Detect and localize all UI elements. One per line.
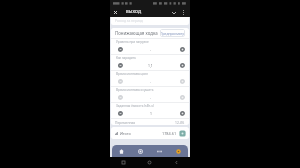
- button[interactable]: Increase: [179, 62, 185, 68]
- button[interactable]: Back: [163, 157, 190, 168]
- button[interactable]: Statistics: [150, 145, 169, 157]
- staticText: -: [150, 79, 152, 84]
- staticText: 12.4%: [175, 120, 185, 124]
- staticText: Переменная: [115, 120, 136, 124]
- staticText: -: [150, 47, 152, 52]
- button[interactable]: Decrease: [117, 94, 123, 100]
- staticText: Как зарядить: [116, 56, 136, 60]
- button[interactable]: Expand: [169, 8, 178, 17]
- button[interactable]: Предпросмотр: [160, 29, 185, 37]
- button[interactable]: Итого: [111, 127, 189, 139]
- staticText: Расход за период: [115, 18, 143, 22]
- staticText: 1: [150, 111, 152, 116]
- button[interactable]: Increase: [179, 46, 185, 52]
- button[interactable]: Schedule: [131, 145, 150, 157]
- staticText: Понижающая ходка: [115, 30, 158, 36]
- button[interactable]: More options: [179, 8, 188, 17]
- staticText: ВЫХОД: [126, 9, 142, 15]
- button[interactable]: Decrease: [117, 78, 123, 84]
- button[interactable]: Settings: [169, 145, 188, 157]
- staticText: 1,1: [148, 63, 153, 68]
- staticText: Итого: [120, 131, 131, 136]
- button[interactable]: Decrease: [117, 46, 123, 52]
- staticText: Время монтажа осушить: [116, 88, 154, 92]
- button[interactable]: Home: [136, 157, 163, 168]
- button[interactable]: Increase: [179, 78, 185, 84]
- staticText: Заданная ёмкость (кВт-ч): [116, 104, 154, 108]
- staticText: Время монтажа цикл: [116, 72, 148, 76]
- button[interactable]: Decrease: [117, 110, 123, 116]
- staticText: Уровень при загрузке: [116, 40, 149, 44]
- button[interactable]: Close: [111, 8, 120, 17]
- staticText: Предпросмотр: [160, 31, 185, 36]
- button[interactable]: Recents: [110, 157, 136, 168]
- button[interactable]: Decrease: [117, 62, 123, 68]
- staticText: -: [150, 95, 152, 100]
- button[interactable]: Increase: [179, 94, 185, 100]
- button[interactable]: Расход за период: [111, 17, 189, 25]
- staticText: 1784.61: [162, 131, 177, 136]
- button[interactable]: Increase: [179, 110, 185, 116]
- button[interactable]: Home: [112, 145, 131, 157]
